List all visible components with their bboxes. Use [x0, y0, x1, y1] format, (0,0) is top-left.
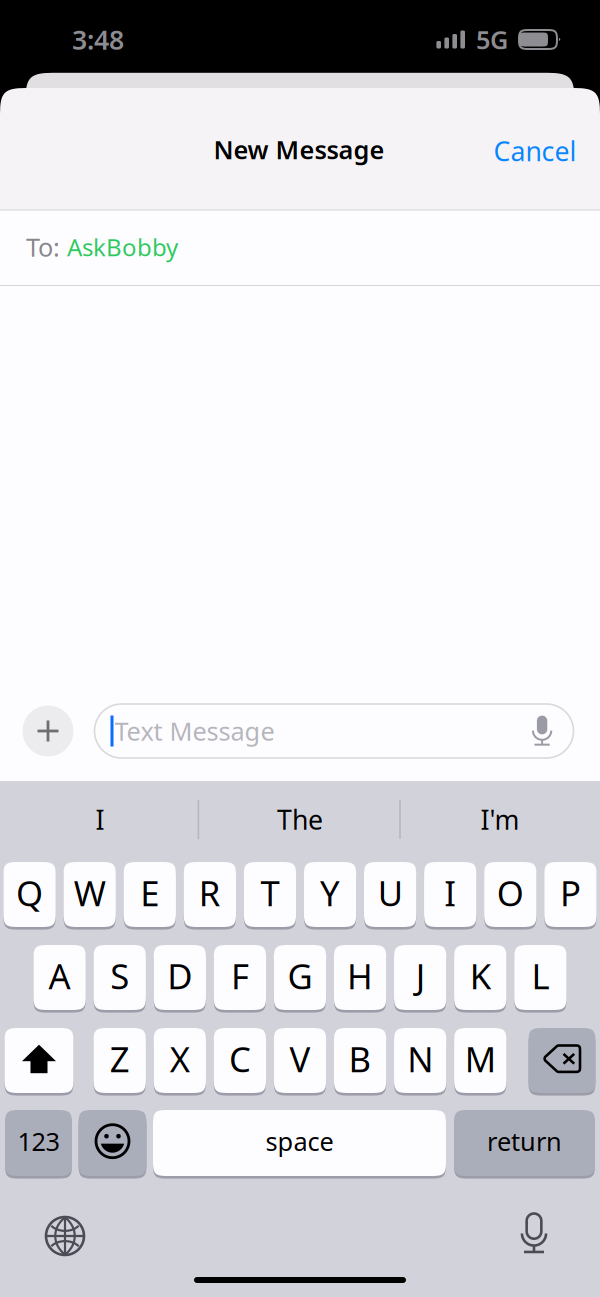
staticText: W: [74, 870, 106, 916]
button[interactable]: Dictate: [515, 1212, 553, 1256]
button[interactable]: L: [514, 943, 567, 1012]
button[interactable]: H: [334, 943, 386, 1012]
staticText: U: [378, 870, 403, 916]
button[interactable]: T: [244, 860, 296, 929]
button[interactable]: return: [454, 1108, 595, 1178]
button[interactable]: M: [454, 1026, 506, 1095]
button[interactable]: U: [364, 860, 416, 929]
button[interactable]: I'm: [400, 790, 600, 848]
button[interactable]: X: [154, 1026, 206, 1095]
staticText: space: [265, 1124, 333, 1158]
staticText: return: [487, 1124, 562, 1158]
staticText: 3:48: [72, 22, 124, 57]
staticText: X: [170, 1036, 190, 1082]
button[interactable]: G: [274, 943, 326, 1012]
staticText: New Message: [213, 133, 384, 166]
staticText: H: [347, 953, 373, 999]
staticText: M: [465, 1036, 496, 1082]
button[interactable]: I: [424, 860, 476, 929]
staticText: 123: [17, 1124, 59, 1158]
staticText: AskBobby: [67, 231, 178, 263]
staticText: R: [199, 870, 221, 916]
button[interactable]: D: [154, 943, 206, 1012]
staticText: K: [470, 953, 491, 999]
staticText: G: [287, 953, 312, 999]
button[interactable]: C: [214, 1026, 266, 1095]
button[interactable]: Cancel: [479, 121, 590, 181]
button[interactable]: B: [334, 1026, 386, 1095]
button[interactable]: space: [153, 1108, 446, 1178]
button[interactable]: Next keyboard: [44, 1215, 86, 1257]
button[interactable]: Y: [304, 860, 356, 929]
button[interactable]: The: [200, 790, 400, 848]
staticText: A: [49, 953, 71, 999]
staticText: 5G: [476, 23, 508, 56]
staticText: C: [229, 1036, 251, 1082]
staticText: E: [140, 870, 159, 916]
button[interactable]: W: [63, 860, 116, 929]
staticText: I'm: [480, 802, 519, 837]
staticText: I: [444, 870, 456, 916]
staticText: L: [531, 953, 549, 999]
staticText: J: [416, 953, 425, 999]
staticText: Q: [16, 870, 43, 916]
button[interactable]: N: [394, 1026, 446, 1095]
button[interactable]: F: [214, 943, 266, 1012]
button[interactable]: R: [184, 860, 236, 929]
button[interactable]: P: [544, 860, 597, 929]
staticText: N: [407, 1036, 433, 1082]
staticText: T: [260, 870, 279, 916]
button[interactable]: S: [93, 943, 146, 1012]
button[interactable]: Z: [93, 1026, 146, 1095]
staticText: V: [289, 1036, 310, 1082]
button[interactable]: Q: [3, 860, 56, 929]
staticText: The: [277, 802, 323, 837]
button[interactable]: I: [0, 790, 200, 848]
button[interactable]: 123: [5, 1108, 72, 1178]
staticText: S: [110, 953, 129, 999]
button[interactable]: Delete: [528, 1026, 595, 1095]
button[interactable]: V: [274, 1026, 326, 1095]
button[interactable]: Emoji: [78, 1108, 146, 1178]
staticText: Text Message: [114, 714, 274, 748]
button[interactable]: O: [484, 860, 537, 929]
button[interactable]: Add attachment: [22, 705, 73, 756]
staticText: To:: [26, 230, 60, 264]
staticText: Y: [320, 870, 340, 916]
button[interactable]: K: [454, 943, 506, 1012]
staticText: D: [167, 953, 192, 999]
staticText: I: [95, 802, 104, 837]
button[interactable]: Shift: [4, 1026, 73, 1095]
button[interactable]: J: [394, 943, 446, 1012]
button[interactable]: E: [124, 860, 176, 929]
staticText: B: [349, 1036, 372, 1082]
staticText: O: [497, 870, 524, 916]
staticText: F: [231, 953, 249, 999]
button[interactable]: A: [33, 943, 86, 1012]
staticText: Z: [110, 1036, 130, 1082]
staticText: P: [560, 870, 581, 916]
staticText: Cancel: [493, 133, 576, 169]
